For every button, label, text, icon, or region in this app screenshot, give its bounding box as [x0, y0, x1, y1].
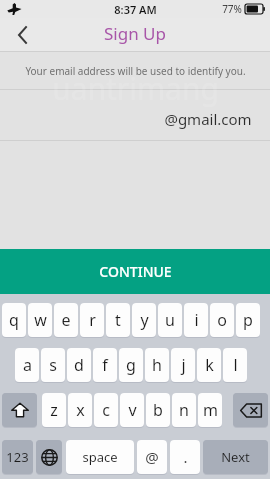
staticText: Sign Up: [104, 22, 166, 45]
button[interactable]: o: [210, 303, 234, 337]
button[interactable]: Backspace: [233, 393, 268, 427]
button[interactable]: 123: [2, 440, 33, 474]
staticText: b: [153, 399, 163, 421]
button[interactable]: h: [145, 348, 169, 382]
button[interactable]: n: [172, 393, 196, 427]
button[interactable]: u: [158, 303, 182, 337]
staticText: Next: [221, 448, 250, 466]
staticText: f: [102, 354, 108, 376]
staticText: n: [179, 399, 189, 421]
button[interactable]: Next: [203, 440, 268, 474]
button[interactable]: CONTINUE: [0, 249, 270, 294]
staticText: Your email address will be used to ident…: [25, 64, 246, 78]
button[interactable]: c: [94, 393, 118, 427]
staticText: v: [128, 399, 137, 421]
button[interactable]: d: [67, 348, 91, 382]
staticText: 77%: [222, 2, 242, 16]
button[interactable]: space: [66, 440, 134, 474]
staticText: y: [140, 309, 149, 331]
staticText: s: [49, 354, 57, 376]
button[interactable]: m: [198, 393, 222, 427]
button[interactable]: Back: [0, 18, 44, 51]
button[interactable]: i: [184, 303, 208, 337]
button[interactable]: e: [54, 303, 78, 337]
staticText: @gmail.com: [164, 109, 252, 129]
staticText: uantrimang: [52, 68, 219, 109]
staticText: CONTINUE: [99, 262, 172, 281]
button[interactable]: k: [197, 348, 221, 382]
staticText: @: [145, 447, 159, 467]
button[interactable]: x: [68, 393, 92, 427]
staticText: j: [181, 354, 186, 376]
button[interactable]: g: [119, 348, 143, 382]
staticText: 123: [6, 448, 29, 466]
button[interactable]: a: [15, 348, 39, 382]
staticText: r: [89, 309, 96, 331]
staticText: m: [203, 399, 218, 421]
button[interactable]: @: [137, 440, 167, 474]
staticText: 8:37 AM: [114, 2, 157, 17]
staticText: h: [152, 354, 162, 376]
staticText: p: [243, 309, 253, 331]
button[interactable]: v: [120, 393, 144, 427]
staticText: i: [194, 309, 199, 331]
staticText: e: [61, 309, 71, 331]
staticText: x: [76, 399, 85, 421]
staticText: q: [9, 309, 19, 331]
button[interactable]: q: [2, 303, 26, 337]
button[interactable]: @gmail.com: [0, 90, 270, 140]
staticText: l: [233, 354, 238, 376]
button[interactable]: f: [93, 348, 117, 382]
staticText: z: [50, 399, 58, 421]
button[interactable]: p: [236, 303, 260, 337]
button[interactable]: z: [42, 393, 66, 427]
button[interactable]: b: [146, 393, 170, 427]
staticText: a: [23, 354, 32, 376]
button[interactable]: y: [132, 303, 156, 337]
button[interactable]: Shift: [2, 393, 37, 427]
button[interactable]: r: [80, 303, 104, 337]
staticText: g: [126, 354, 136, 376]
staticText: .: [183, 447, 188, 467]
staticText: c: [102, 399, 110, 421]
button[interactable]: s: [41, 348, 65, 382]
button[interactable]: l: [223, 348, 247, 382]
button[interactable]: t: [106, 303, 130, 337]
staticText: w: [34, 309, 47, 331]
staticText: u: [165, 309, 175, 331]
staticText: o: [217, 309, 227, 331]
button[interactable]: w: [28, 303, 52, 337]
button[interactable]: Switch keyboard: [36, 440, 62, 474]
staticText: k: [205, 354, 214, 376]
staticText: space: [82, 448, 118, 466]
button[interactable]: .: [170, 440, 200, 474]
staticText: d: [74, 354, 84, 376]
button[interactable]: j: [171, 348, 195, 382]
staticText: t: [115, 309, 121, 331]
